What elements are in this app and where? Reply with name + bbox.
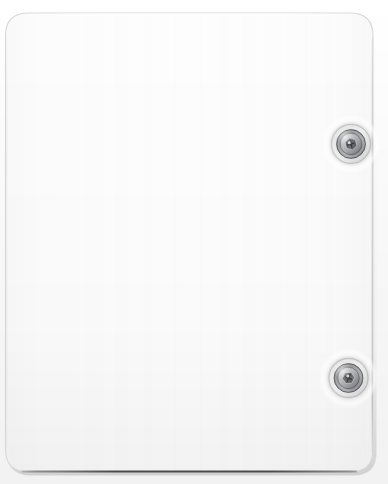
button[interactable]: White wall enclosure with two screws bbox=[0, 0, 388, 484]
